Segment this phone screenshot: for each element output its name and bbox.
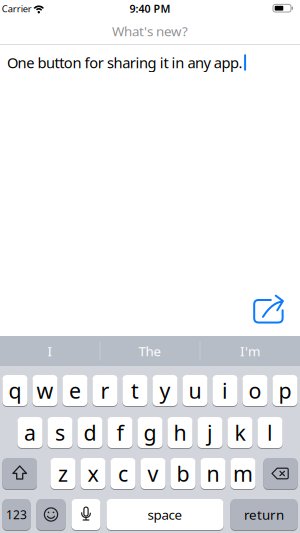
button[interactable]: I [1, 336, 99, 366]
staticText: a [24, 418, 36, 447]
button[interactable]: i [212, 375, 238, 406]
staticText: z [58, 459, 68, 488]
staticText: Carrier [2, 2, 32, 15]
button[interactable]: space [106, 499, 223, 530]
button[interactable]: o [242, 375, 268, 406]
staticText: b [176, 459, 189, 488]
button[interactable]: The [101, 336, 199, 366]
staticText: e [69, 376, 81, 405]
staticText: h [173, 418, 186, 447]
staticText: o [248, 376, 261, 405]
staticText: 9:40 PM [129, 2, 170, 16]
button[interactable]: z [50, 458, 76, 489]
staticText: d [83, 418, 96, 447]
button[interactable] [263, 458, 298, 489]
button[interactable]: I'm [201, 336, 299, 366]
button[interactable]: v [140, 458, 166, 489]
button[interactable]: g [137, 417, 163, 448]
staticText: v [147, 459, 158, 488]
button[interactable]: e [62, 375, 88, 406]
button[interactable] [0, 0, 300, 533]
staticText: u [188, 376, 201, 405]
button[interactable]: j [197, 417, 223, 448]
staticText: p [278, 376, 291, 405]
button[interactable]: y [152, 375, 178, 406]
staticText: l [267, 418, 273, 447]
staticText: g [143, 418, 156, 447]
staticText: The [138, 342, 161, 360]
staticText: n [206, 459, 219, 488]
staticText: c [118, 459, 128, 488]
staticText: j [207, 418, 213, 447]
button[interactable]: l [257, 417, 283, 448]
staticText: r [100, 376, 109, 405]
staticText: 123 [6, 506, 27, 522]
button[interactable]: return [230, 499, 297, 530]
button[interactable]: p [272, 375, 298, 406]
staticText: I [47, 342, 52, 360]
button[interactable]: x [80, 458, 106, 489]
button[interactable]: s [47, 417, 73, 448]
button[interactable]: b [170, 458, 196, 489]
button[interactable] [2, 458, 37, 489]
button[interactable]: f [107, 417, 133, 448]
button[interactable]: 123 [2, 499, 30, 530]
button[interactable]: d [77, 417, 103, 448]
button[interactable]: u [182, 375, 208, 406]
staticText: i [222, 376, 228, 405]
staticText: return [244, 506, 284, 523]
button[interactable]: a [17, 417, 43, 448]
staticText: k [234, 418, 245, 447]
staticText: y [159, 376, 170, 405]
button[interactable]: h [167, 417, 193, 448]
button[interactable]: n [200, 458, 226, 489]
button[interactable] [71, 499, 100, 530]
staticText: x [87, 459, 98, 488]
staticText: q [8, 376, 21, 405]
staticText: What's new? [112, 22, 188, 40]
button[interactable]: k [227, 417, 253, 448]
staticText: One button for sharing it in any app. [7, 53, 243, 72]
staticText: space [147, 506, 182, 523]
staticText: I'm [240, 342, 260, 360]
button[interactable] [36, 499, 65, 530]
button[interactable]: r [92, 375, 118, 406]
staticText: t [131, 376, 139, 405]
button[interactable]: t [122, 375, 148, 406]
staticText: m [233, 459, 253, 488]
button[interactable]: w [32, 375, 58, 406]
button[interactable]: c [110, 458, 136, 489]
staticText: w [36, 376, 53, 405]
button[interactable]: m [230, 458, 256, 489]
staticText: s [55, 418, 65, 447]
staticText: f [116, 418, 123, 447]
button[interactable]: q [2, 375, 28, 406]
